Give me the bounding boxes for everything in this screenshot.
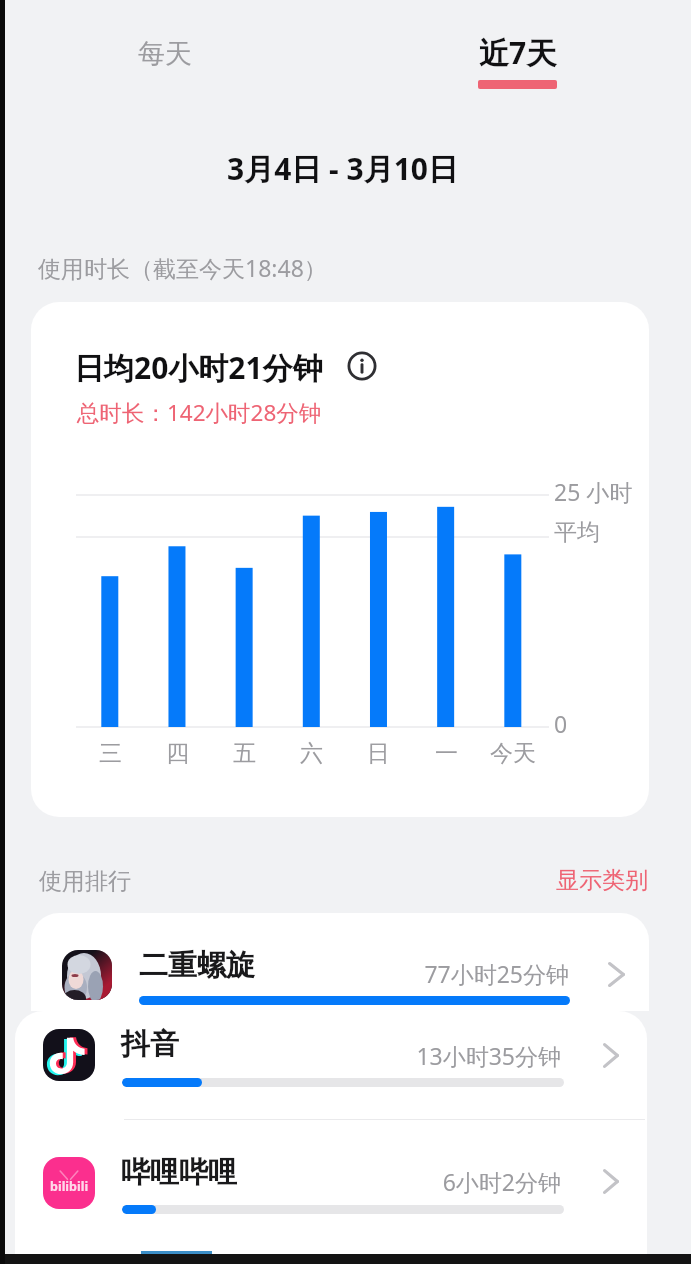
button[interactable]: bilibili	[15, 1120, 647, 1254]
staticText: 哔哩哔哩	[121, 1154, 237, 1191]
staticText: 四	[166, 739, 189, 768]
staticText: 显示类别	[556, 866, 648, 895]
staticText: 6小时2分钟	[15, 1166, 561, 1197]
staticText: 77小时25分钟	[31, 958, 569, 989]
staticText: 三	[99, 739, 122, 768]
button[interactable]: 近7天	[458, 22, 577, 99]
staticText: 平均	[554, 518, 600, 547]
staticText: 13小时35分钟	[15, 1040, 561, 1071]
staticText: 每天	[138, 37, 192, 71]
staticText: 近7天	[479, 32, 557, 73]
button[interactable]: 每天	[120, 25, 210, 83]
staticText: bilibili	[50, 1178, 89, 1195]
staticText: 二重螺旋	[139, 947, 255, 984]
button[interactable]: 显示类别	[556, 866, 648, 895]
button[interactable]: 日均20小时21分钟	[31, 302, 649, 817]
staticText: 今天	[490, 739, 536, 768]
staticText: 使用时长（截至今天18:48）	[38, 252, 327, 283]
staticText: 使用排行	[39, 867, 131, 896]
staticText: 25 小时	[554, 476, 633, 507]
staticText: 五	[233, 739, 256, 768]
staticText: 3月4日 - 3月10日	[227, 148, 458, 189]
button[interactable]: 二重螺旋	[31, 913, 649, 1011]
staticText: 日	[367, 739, 390, 768]
button[interactable]: 说明	[344, 348, 380, 384]
staticText: 六	[300, 739, 323, 768]
staticText: 总时长：142小时28分钟	[77, 397, 322, 428]
staticText: 日均20小时21分钟	[74, 347, 323, 388]
staticText: 一	[435, 739, 458, 768]
staticText: 抖音	[121, 1026, 179, 1063]
staticText: 0	[554, 708, 568, 739]
button[interactable]: 抖音	[15, 1011, 647, 1119]
